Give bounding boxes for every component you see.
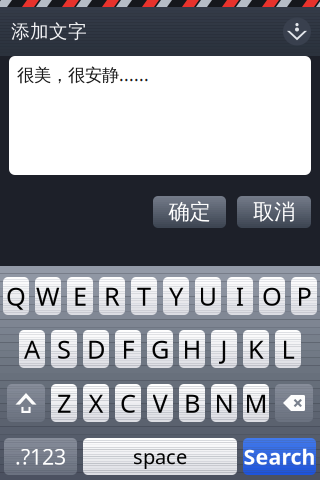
button[interactable]: Y (163, 277, 189, 315)
staticText: D (87, 332, 105, 366)
button[interactable]: O (259, 277, 285, 315)
button[interactable]: Z (51, 384, 77, 422)
staticText: Z (57, 386, 71, 420)
button[interactable]: R (99, 277, 125, 315)
button[interactable]: H (179, 330, 205, 368)
button[interactable]: V (147, 384, 173, 422)
staticText: E (73, 279, 87, 313)
staticText: .?123 (15, 442, 66, 471)
button[interactable]: G (147, 330, 173, 368)
button[interactable]: 确定 (153, 196, 226, 228)
staticText: N (214, 386, 233, 420)
staticText: U (198, 279, 217, 313)
staticText: L (281, 332, 294, 366)
button[interactable]: E (67, 277, 93, 315)
staticText: A (24, 332, 40, 366)
staticText: 确定 (168, 199, 210, 225)
button[interactable]: 取消 (237, 196, 311, 228)
staticText: R (104, 279, 120, 313)
staticText: J (220, 332, 227, 366)
staticText: F (121, 332, 134, 366)
button[interactable]: P (291, 277, 317, 315)
staticText: 取消 (253, 199, 295, 225)
button[interactable]: A (19, 330, 45, 368)
staticText: Q (6, 279, 26, 313)
button[interactable]: C (115, 384, 141, 422)
button[interactable]: T (131, 277, 157, 315)
button[interactable]: L (275, 330, 301, 368)
staticText: V (152, 386, 167, 420)
staticText: space (133, 443, 187, 470)
button[interactable]: M (243, 384, 269, 422)
button[interactable]: N (211, 384, 237, 422)
staticText: 添加文字 (11, 20, 87, 43)
staticText: T (137, 279, 151, 313)
button[interactable]: Search (243, 438, 316, 475)
button[interactable]: Q (3, 277, 29, 315)
staticText: S (57, 332, 71, 366)
staticText: Y (169, 279, 183, 313)
button[interactable]: I (227, 277, 253, 315)
button[interactable]: S (51, 330, 77, 368)
button[interactable]: X (83, 384, 109, 422)
button[interactable]: space (83, 438, 237, 475)
button[interactable]: F (115, 330, 141, 368)
staticText: Search (243, 442, 315, 471)
staticText: I (235, 279, 244, 313)
staticText: C (120, 386, 136, 420)
staticText: W (36, 279, 60, 313)
staticText: H (182, 332, 201, 366)
staticText: M (244, 386, 267, 420)
staticText: K (248, 332, 264, 366)
button[interactable]: Hide keyboard (280, 14, 314, 48)
button[interactable]: W (35, 277, 61, 315)
button[interactable]: U (195, 277, 221, 315)
staticText: G (151, 332, 169, 366)
staticText: P (296, 279, 311, 313)
button[interactable]: Shift (7, 384, 45, 422)
button[interactable]: B (179, 384, 205, 422)
staticText: O (262, 279, 282, 313)
button[interactable]: J (211, 330, 237, 368)
staticText: 很美，很安静...... (17, 63, 149, 86)
button[interactable]: Delete (275, 384, 313, 422)
staticText: B (184, 386, 200, 420)
button[interactable]: D (83, 330, 109, 368)
button[interactable]: .?123 (4, 438, 77, 475)
button[interactable]: K (243, 330, 269, 368)
staticText: X (88, 386, 103, 420)
